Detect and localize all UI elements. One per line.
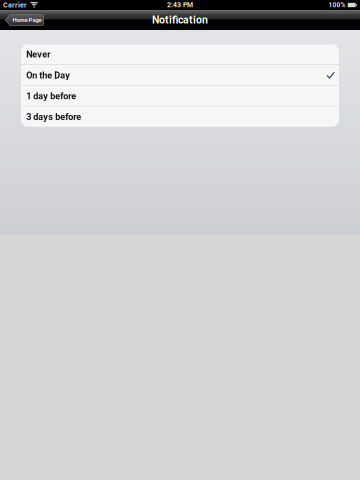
button[interactable]: Home Page <box>5 14 44 26</box>
staticText: 3 days before <box>26 112 81 122</box>
staticText: 1 day before <box>26 91 76 101</box>
staticText: Notification <box>152 14 208 26</box>
button[interactable]: On the Day <box>21 65 339 86</box>
staticText: 100% <box>328 1 345 9</box>
staticText: On the Day <box>26 70 70 81</box>
button[interactable]: Never <box>21 44 339 65</box>
staticText: Carrier <box>3 1 27 9</box>
staticText: Home Page <box>12 17 41 23</box>
staticText: Notification <box>152 15 208 27</box>
staticText: Never <box>26 49 50 60</box>
button[interactable]: 3 days before <box>21 107 339 127</box>
button[interactable]: 1 day before <box>21 86 339 107</box>
staticText: 2:43 PM <box>167 1 193 9</box>
